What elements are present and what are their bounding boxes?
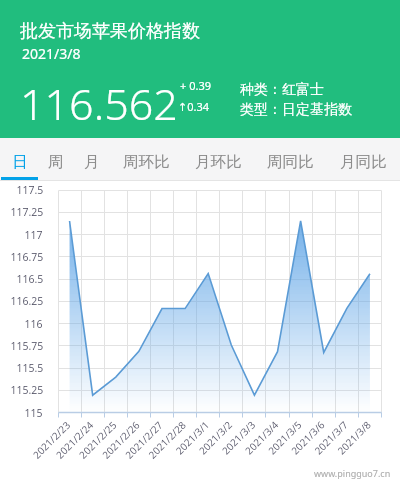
staticText: 日 [12, 152, 28, 172]
staticText: 月 [84, 152, 100, 172]
button[interactable]: 日 [12, 138, 28, 180]
button[interactable]: 周同比 [267, 138, 314, 180]
staticText: 周同比 [267, 152, 314, 172]
staticText: 周 [48, 152, 64, 172]
button[interactable]: 周环比 [123, 138, 170, 180]
staticText: 2021/3/8 [22, 44, 81, 63]
staticText: 月环比 [195, 152, 242, 172]
button[interactable]: 月同比 [340, 138, 387, 180]
staticText: + 0.39 [180, 78, 211, 93]
staticText: 种类：红富士 [240, 81, 324, 99]
button[interactable]: 周 [48, 138, 64, 180]
staticText: 116.562 [20, 74, 178, 133]
staticText: 月同比 [340, 152, 387, 172]
button[interactable]: 月 [84, 138, 100, 180]
staticText: ↑0.34 [178, 99, 210, 114]
staticText: 批发市场苹果价格指数 [20, 20, 200, 43]
button[interactable]: 月环比 [195, 138, 242, 180]
staticText: 周环比 [123, 152, 170, 172]
staticText: 类型：日定基指数 [240, 101, 352, 119]
